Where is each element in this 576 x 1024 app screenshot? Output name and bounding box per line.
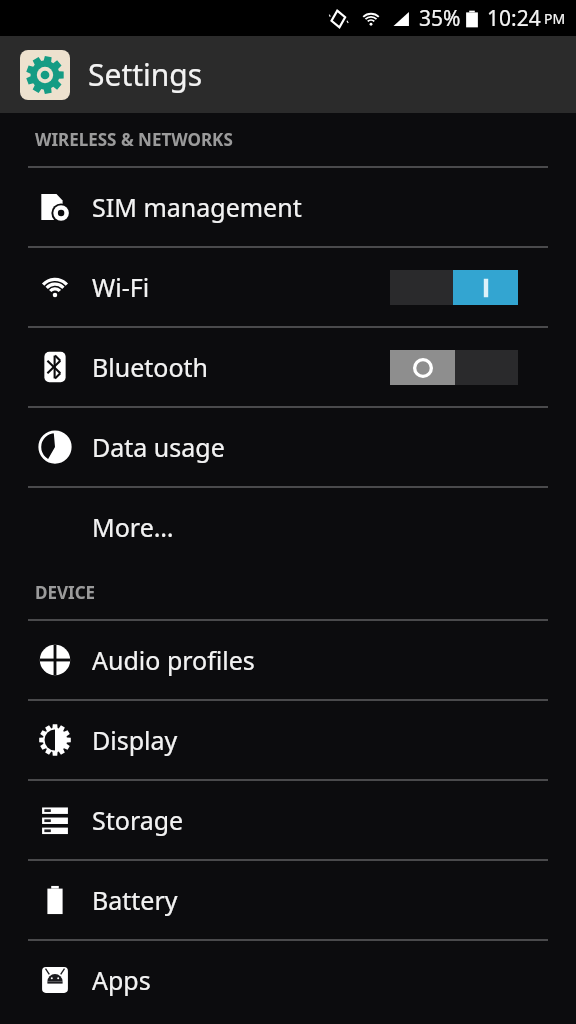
- staticText: Bluetooth: [92, 350, 209, 384]
- staticText: More…: [92, 510, 174, 544]
- staticText: DEVICE: [35, 581, 96, 604]
- staticText: 10:24: [487, 4, 541, 33]
- staticText: Data usage: [92, 430, 225, 464]
- staticText: Display: [92, 723, 178, 757]
- button[interactable]: Wi-Fi: [0, 248, 576, 326]
- staticText: PM: [544, 9, 566, 28]
- button[interactable]: SIM management: [0, 168, 576, 246]
- staticText: Wi-Fi: [92, 270, 150, 304]
- staticText: WIRELESS & NETWORKS: [35, 128, 233, 151]
- staticText: Settings: [88, 54, 203, 95]
- staticText: 35%: [419, 4, 461, 33]
- button[interactable]: Data usage: [0, 408, 576, 486]
- button[interactable]: Switch on: [390, 270, 518, 305]
- staticText: Apps: [92, 963, 151, 997]
- button[interactable]: Audio profiles: [0, 621, 576, 699]
- button[interactable]: Apps: [0, 941, 576, 1019]
- button[interactable]: Display: [0, 701, 576, 779]
- staticText: Storage: [92, 803, 184, 837]
- staticText: SIM management: [92, 190, 302, 224]
- button[interactable]: More…: [0, 488, 576, 566]
- staticText: Audio profiles: [92, 643, 255, 677]
- button[interactable]: Storage: [0, 781, 576, 859]
- button[interactable]: Bluetooth: [0, 328, 576, 406]
- button[interactable]: Switch off: [390, 350, 518, 385]
- staticText: Battery: [92, 883, 178, 917]
- button[interactable]: Battery: [0, 861, 576, 939]
